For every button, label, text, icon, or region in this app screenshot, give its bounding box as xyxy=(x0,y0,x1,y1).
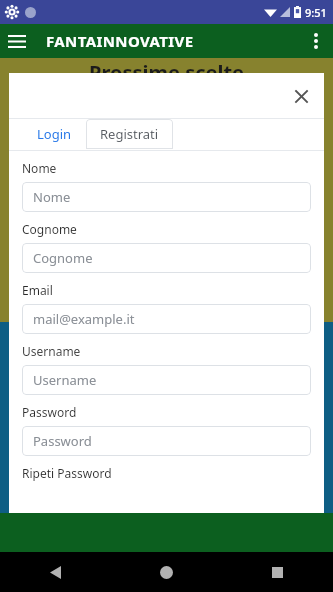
staticText: Cognome xyxy=(33,249,93,267)
staticText: Username xyxy=(33,371,97,389)
staticText: Registrati xyxy=(100,125,159,143)
staticText: Password xyxy=(33,432,92,450)
staticText: Email xyxy=(22,282,53,298)
staticText: Password xyxy=(22,404,77,420)
button[interactable]: Username xyxy=(22,365,311,395)
button[interactable]: Recent apps xyxy=(222,552,333,592)
button[interactable]: Cognome xyxy=(22,243,311,273)
staticText: FANTAINNOVATIVE xyxy=(46,31,194,51)
staticText: Login xyxy=(37,125,72,143)
button[interactable]: Home xyxy=(111,552,222,592)
staticText: mail@example.it xyxy=(33,310,135,328)
button[interactable]: Nome xyxy=(22,182,311,212)
button[interactable]: Registrati xyxy=(86,119,173,149)
button[interactable]: Login xyxy=(23,119,86,149)
staticText: Prossime scelte xyxy=(0,59,333,86)
staticText: 9:51 xyxy=(305,5,327,20)
button[interactable]: More options xyxy=(299,24,333,58)
button[interactable]: Back xyxy=(0,552,111,592)
staticText: Cognome xyxy=(22,221,77,237)
button[interactable]: Open navigation menu xyxy=(0,24,34,58)
staticText: Nome xyxy=(22,160,57,176)
staticText: Ripeti Password xyxy=(22,465,112,481)
staticText: Username xyxy=(22,343,81,359)
button[interactable]: mail@example.it xyxy=(22,304,311,334)
button[interactable]: Close xyxy=(284,79,318,113)
staticText: Nome xyxy=(33,188,71,206)
button[interactable]: Password xyxy=(22,426,311,456)
